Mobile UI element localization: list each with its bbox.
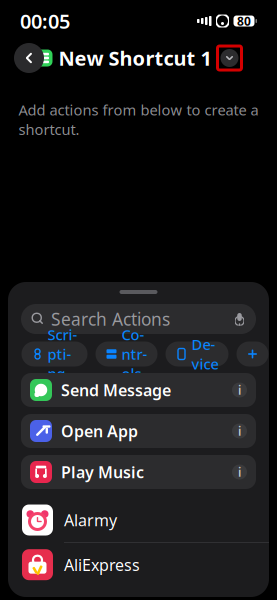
button[interactable]: Send Message — [21, 373, 256, 407]
staticText: i — [238, 464, 241, 480]
staticText: Play Music — [61, 461, 144, 483]
button[interactable]: Open App — [21, 414, 256, 448]
staticText: AliExpress — [64, 554, 140, 575]
button[interactable]: More info — [232, 423, 247, 438]
staticText: Open App — [61, 420, 138, 442]
staticText: Add actions from below to create a short… — [18, 100, 258, 139]
staticText: Scripting — [47, 325, 77, 383]
button[interactable]: Controls — [95, 341, 157, 366]
button[interactable]: Shortcut options — [217, 46, 241, 70]
staticText: 80 — [237, 13, 251, 29]
staticText: i — [238, 382, 241, 398]
button[interactable]: Alarmy — [8, 498, 269, 543]
button[interactable] — [236, 341, 268, 366]
button[interactable]: Back — [14, 43, 44, 73]
staticText: Device — [191, 334, 218, 373]
staticText: Search Actions — [51, 307, 170, 330]
button[interactable]: Device — [165, 341, 228, 366]
staticText: Send Message — [61, 379, 171, 401]
staticText: Controls — [121, 325, 147, 383]
button[interactable]: AliExpress — [8, 543, 269, 587]
staticText: New Shortcut 1 — [58, 45, 211, 71]
button[interactable]: More info — [232, 464, 247, 479]
staticText: i — [238, 423, 241, 439]
button[interactable]: Search Actions — [21, 304, 256, 334]
staticText: 00:05 — [20, 8, 70, 34]
button[interactable]: More info — [232, 382, 247, 397]
staticText: Alarmy — [64, 509, 117, 531]
button[interactable]: Scripting — [21, 341, 87, 366]
button[interactable]: Play Music — [21, 455, 256, 489]
